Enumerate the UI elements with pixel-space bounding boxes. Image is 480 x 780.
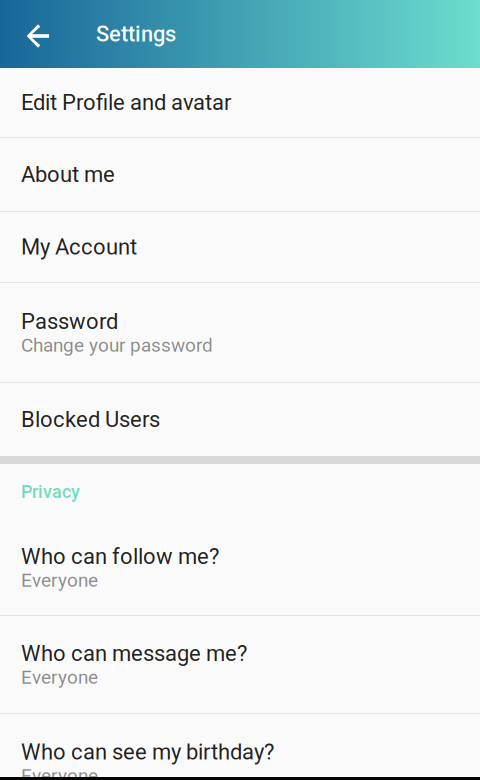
- button[interactable]: About me: [0, 138, 480, 211]
- staticText: Who can message me?: [21, 640, 247, 666]
- button[interactable]: Who can follow me?: [0, 520, 480, 615]
- staticText: My Account: [21, 234, 137, 260]
- staticText: Password: [21, 308, 118, 334]
- staticText: About me: [21, 162, 115, 187]
- staticText: Settings: [96, 21, 176, 47]
- button[interactable]: Password: [0, 283, 480, 382]
- button[interactable]: Who can message me?: [0, 616, 480, 713]
- staticText: Change your password: [21, 334, 213, 356]
- button[interactable]: My Account: [0, 212, 480, 282]
- staticText: Blocked Users: [21, 407, 160, 432]
- button[interactable]: Edit Profile and avatar: [0, 68, 480, 137]
- staticText: Everyone: [21, 569, 98, 591]
- staticText: Edit Profile and avatar: [21, 90, 231, 115]
- staticText: Everyone: [21, 666, 98, 688]
- staticText: Privacy: [21, 481, 80, 502]
- button[interactable]: Back: [0, 0, 54, 68]
- staticText: Who can see my birthday?: [21, 739, 274, 765]
- staticText: Who can follow me?: [21, 543, 219, 569]
- staticText: Everyone: [21, 765, 98, 780]
- button[interactable]: Who can see my birthday?: [0, 714, 480, 780]
- button[interactable]: Blocked Users: [0, 383, 480, 456]
